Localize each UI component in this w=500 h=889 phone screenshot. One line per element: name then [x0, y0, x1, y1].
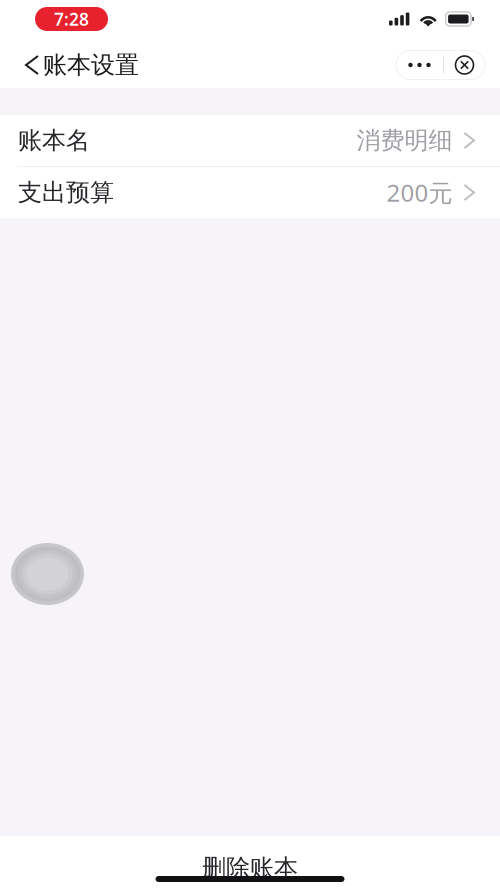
button[interactable]: 账本设置: [0, 43, 151, 87]
staticText: 账本名: [18, 126, 90, 155]
staticText: 7:28: [54, 7, 89, 30]
button[interactable]: 删除账本: [0, 853, 500, 883]
button[interactable]: 支出预算: [0, 167, 500, 218]
staticText: 200元: [386, 177, 452, 208]
button[interactable]: Close: [444, 50, 485, 79]
button[interactable]: 账本名: [0, 115, 500, 166]
staticText: 删除账本: [202, 853, 298, 883]
staticText: 消费明细: [356, 126, 452, 155]
staticText: 账本设置: [43, 50, 139, 80]
button[interactable]: More: [396, 50, 443, 79]
staticText: 支出预算: [18, 178, 114, 207]
